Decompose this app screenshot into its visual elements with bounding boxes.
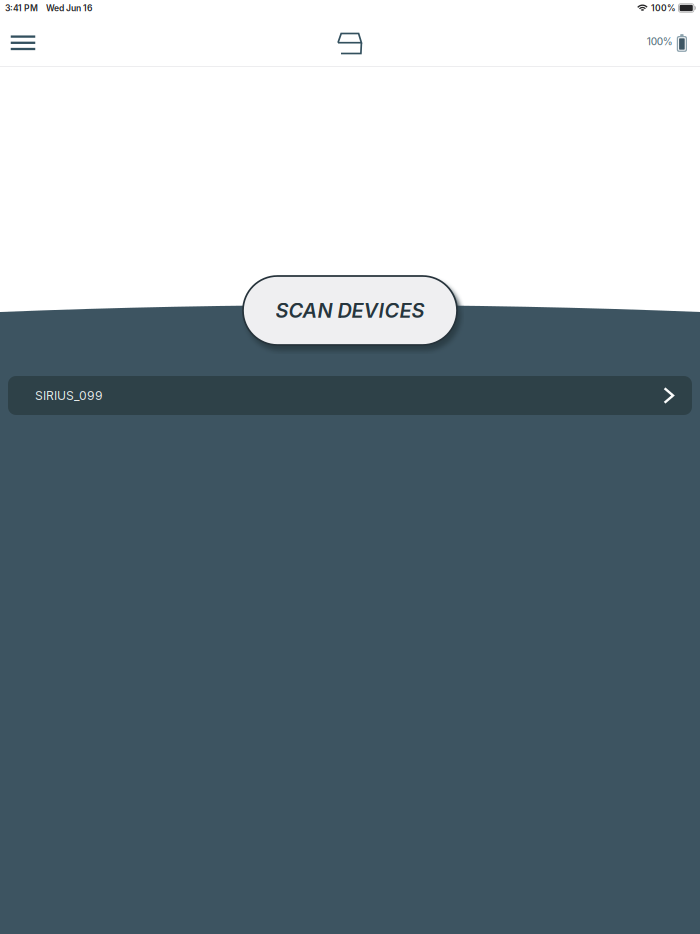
staticText: Wed Jun 16 [46,3,93,13]
staticText: 100% [651,3,676,13]
button[interactable]: Menu [3,21,43,61]
button[interactable]: SIRIUS_099 [0,376,700,415]
staticText: 3:41 PM [5,3,38,13]
staticText: 100% [647,35,673,48]
staticText: SCAN DEVICES [275,298,424,323]
button[interactable]: SCAN DEVICES [243,276,457,345]
staticText: SIRIUS_099 [35,388,103,403]
